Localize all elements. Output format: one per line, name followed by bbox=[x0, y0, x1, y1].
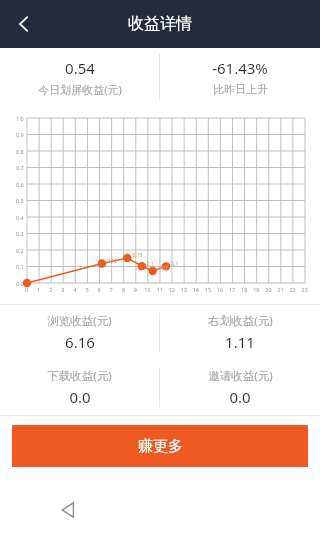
staticText: 0.0 bbox=[69, 387, 91, 407]
button[interactable]: 下载收益(元) bbox=[0, 360, 159, 415]
staticText: 今日划屏收益(元) bbox=[38, 82, 122, 97]
staticText: 比昨日上升 bbox=[213, 82, 268, 96]
button[interactable]: Back bbox=[48, 490, 88, 530]
button[interactable]: 赚更多 bbox=[12, 425, 308, 467]
staticText: -61.43% bbox=[212, 58, 268, 78]
staticText: 浏览收益(元) bbox=[47, 313, 112, 329]
button[interactable]: 邀请收益(元) bbox=[160, 360, 320, 415]
staticText: 0.0 bbox=[229, 387, 251, 407]
staticText: 赚更多 bbox=[138, 437, 183, 456]
staticText: 邀请收益(元) bbox=[208, 368, 273, 384]
staticText: 右划收益(元) bbox=[208, 313, 273, 329]
staticText: 6.16 bbox=[65, 332, 95, 352]
staticText: 0.54 bbox=[65, 58, 95, 78]
staticText: 1.11 bbox=[225, 332, 255, 352]
staticText: 收益详情 bbox=[128, 14, 192, 34]
button[interactable]: 浏览收益(元) bbox=[0, 305, 159, 360]
staticText: 下载收益(元) bbox=[47, 368, 112, 384]
button[interactable]: Back bbox=[0, 0, 48, 48]
button[interactable]: 右划收益(元) bbox=[160, 305, 320, 360]
